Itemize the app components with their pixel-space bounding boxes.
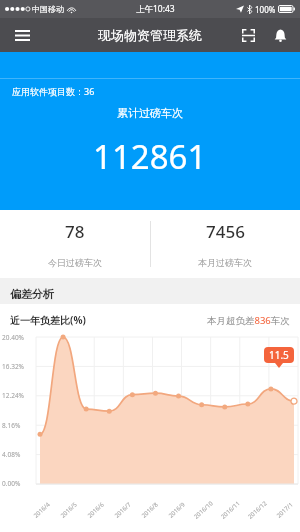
- staticText: 0.00%: [2, 479, 21, 488]
- staticText: 12.24%: [2, 391, 25, 400]
- staticText: 中国移动: [32, 4, 64, 14]
- staticText: 112861: [93, 134, 207, 179]
- button[interactable]: Notifications: [264, 19, 296, 51]
- staticText: 4.08%: [2, 450, 21, 459]
- staticText: 2016/4: [32, 500, 52, 520]
- staticText: 现场物资管理系统: [98, 27, 202, 43]
- staticText: 2016/6: [86, 500, 106, 520]
- button[interactable]: Menu: [6, 19, 38, 51]
- staticText: 2016/8: [140, 500, 160, 520]
- staticText: 偏差分析: [10, 287, 54, 301]
- staticText: 本月过磅车次: [198, 257, 252, 268]
- staticText: 100%: [255, 4, 276, 15]
- staticText: 2016/11: [219, 499, 242, 521]
- staticText: 上午10:43: [136, 3, 175, 15]
- staticText: 16.32%: [2, 362, 25, 371]
- staticText: 今日过磅车次: [48, 257, 102, 268]
- staticText: 2016/5: [59, 500, 79, 520]
- button[interactable]: 7456: [150, 210, 300, 278]
- staticText: 20.40%: [2, 333, 25, 342]
- staticText: 2017/1: [275, 500, 295, 520]
- staticText: 2016/12: [246, 499, 269, 521]
- staticText: 11.5: [269, 348, 289, 362]
- staticText: 2016/7: [113, 500, 133, 520]
- button[interactable]: 78: [0, 210, 150, 278]
- staticText: 2016/10: [192, 499, 215, 521]
- button[interactable]: Scan: [232, 19, 264, 51]
- staticText: 78: [65, 220, 85, 243]
- staticText: 7456: [206, 220, 245, 243]
- staticText: 8.16%: [2, 421, 21, 430]
- staticText: 应用软件项目数：36: [12, 85, 95, 97]
- staticText: 2016/9: [167, 500, 187, 520]
- staticText: 本月超负差836车次: [207, 314, 290, 327]
- staticText: 累计过磅车次: [117, 106, 183, 120]
- staticText: 近一年负差比(%): [10, 313, 86, 327]
